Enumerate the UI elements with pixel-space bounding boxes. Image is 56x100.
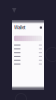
button[interactable]: Row 5 [14, 58, 42, 62]
button[interactable]: Balance card [14, 36, 42, 41]
button[interactable]: Row 3 [14, 51, 42, 55]
staticText: Wallet [14, 25, 25, 30]
button[interactable]: Row 1 [14, 43, 42, 47]
button[interactable]: Row 4 [14, 55, 42, 58]
button[interactable]: Menu [40, 26, 42, 29]
button[interactable]: Row 2 [14, 47, 42, 51]
button[interactable]: Row 6 [14, 62, 42, 66]
